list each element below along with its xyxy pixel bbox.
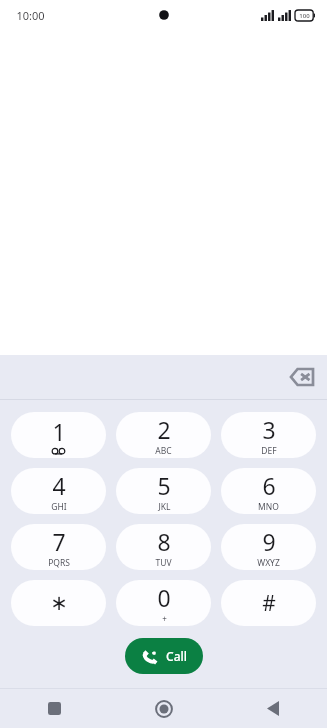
staticText: WXYZ: [257, 557, 280, 569]
staticText: 9: [262, 526, 276, 557]
button[interactable]: 1: [11, 412, 106, 458]
staticText: 6: [262, 470, 276, 501]
staticText: +: [162, 613, 167, 624]
staticText: 10:00: [16, 8, 45, 23]
button[interactable]: Recents: [0, 689, 109, 728]
staticText: 4: [52, 470, 66, 501]
button[interactable]: 8: [116, 524, 211, 570]
button[interactable]: 9: [221, 524, 316, 570]
staticText: 2: [157, 414, 171, 445]
staticText: ∗: [50, 591, 68, 615]
staticText: 1: [52, 416, 66, 447]
staticText: TUV: [155, 557, 172, 569]
button[interactable]: Back: [218, 689, 327, 728]
staticText: 7: [52, 526, 66, 557]
staticText: 8: [157, 526, 171, 557]
button[interactable]: Backspace: [285, 360, 319, 394]
staticText: GHI: [51, 501, 67, 513]
button[interactable]: Home: [109, 689, 218, 728]
staticText: 0: [157, 582, 171, 613]
staticText: 100: [299, 12, 310, 20]
button[interactable]: 7: [11, 524, 106, 570]
button[interactable]: 2: [116, 412, 211, 458]
button[interactable]: 6: [221, 468, 316, 514]
staticText: #: [262, 589, 276, 618]
staticText: PQRS: [48, 557, 70, 569]
button[interactable]: #: [221, 580, 316, 626]
button[interactable]: 0: [116, 580, 211, 626]
button[interactable]: 4: [11, 468, 106, 514]
staticText: 5: [157, 470, 171, 501]
button[interactable]: 3: [221, 412, 316, 458]
button[interactable]: Call: [125, 638, 203, 674]
staticText: MNO: [258, 501, 279, 513]
staticText: Call: [166, 648, 187, 664]
button[interactable]: 5: [116, 468, 211, 514]
button[interactable]: ∗: [11, 580, 106, 626]
staticText: DEF: [261, 445, 277, 457]
staticText: 3: [262, 414, 276, 445]
staticText: JKL: [158, 501, 171, 513]
staticText: ABC: [155, 445, 172, 457]
